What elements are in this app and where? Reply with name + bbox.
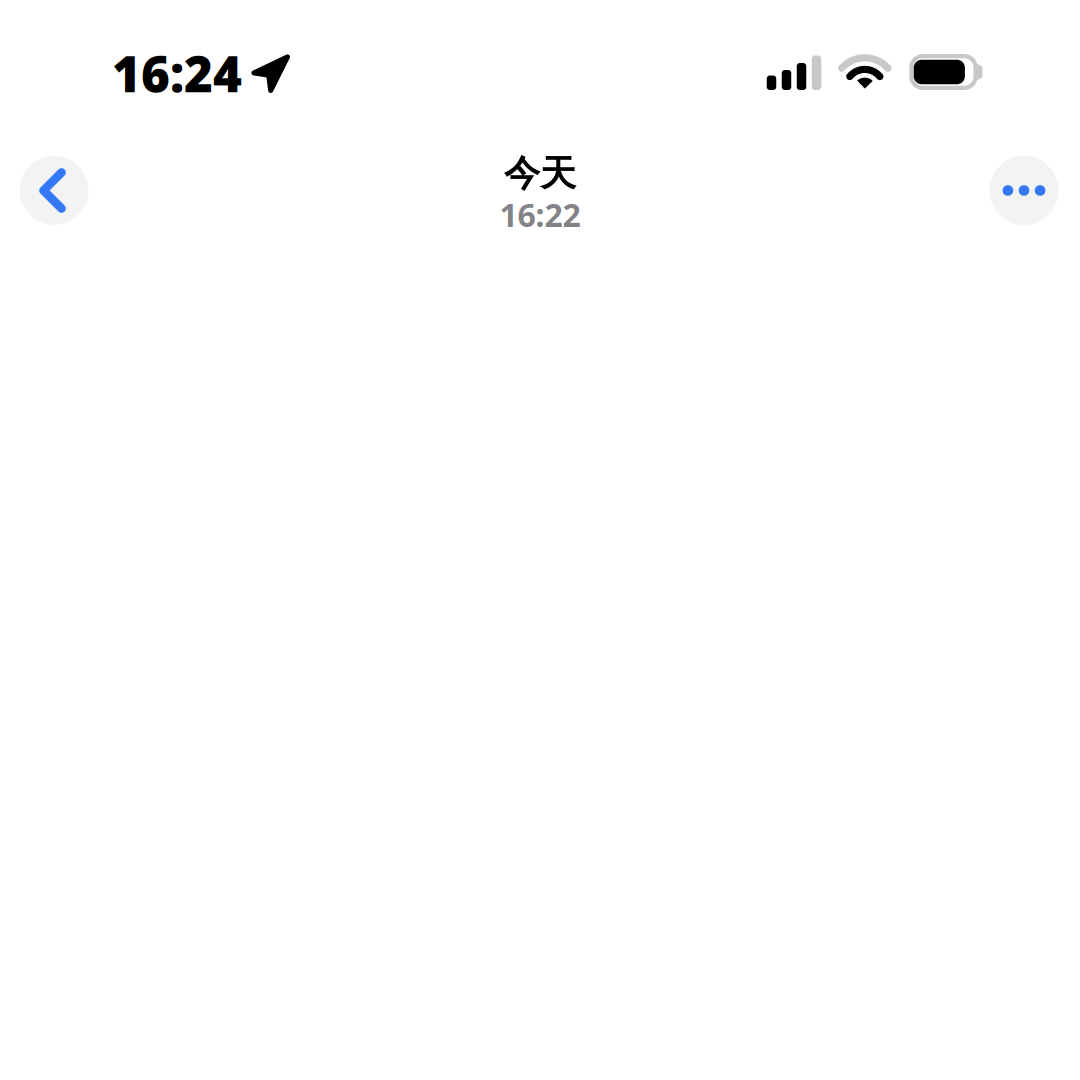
staticText: 16:24 <box>112 40 242 106</box>
button[interactable]: More options <box>989 156 1058 225</box>
staticText: 今天 <box>504 151 576 196</box>
button[interactable]: Back <box>19 156 88 225</box>
staticText: 16:22 <box>499 193 580 236</box>
